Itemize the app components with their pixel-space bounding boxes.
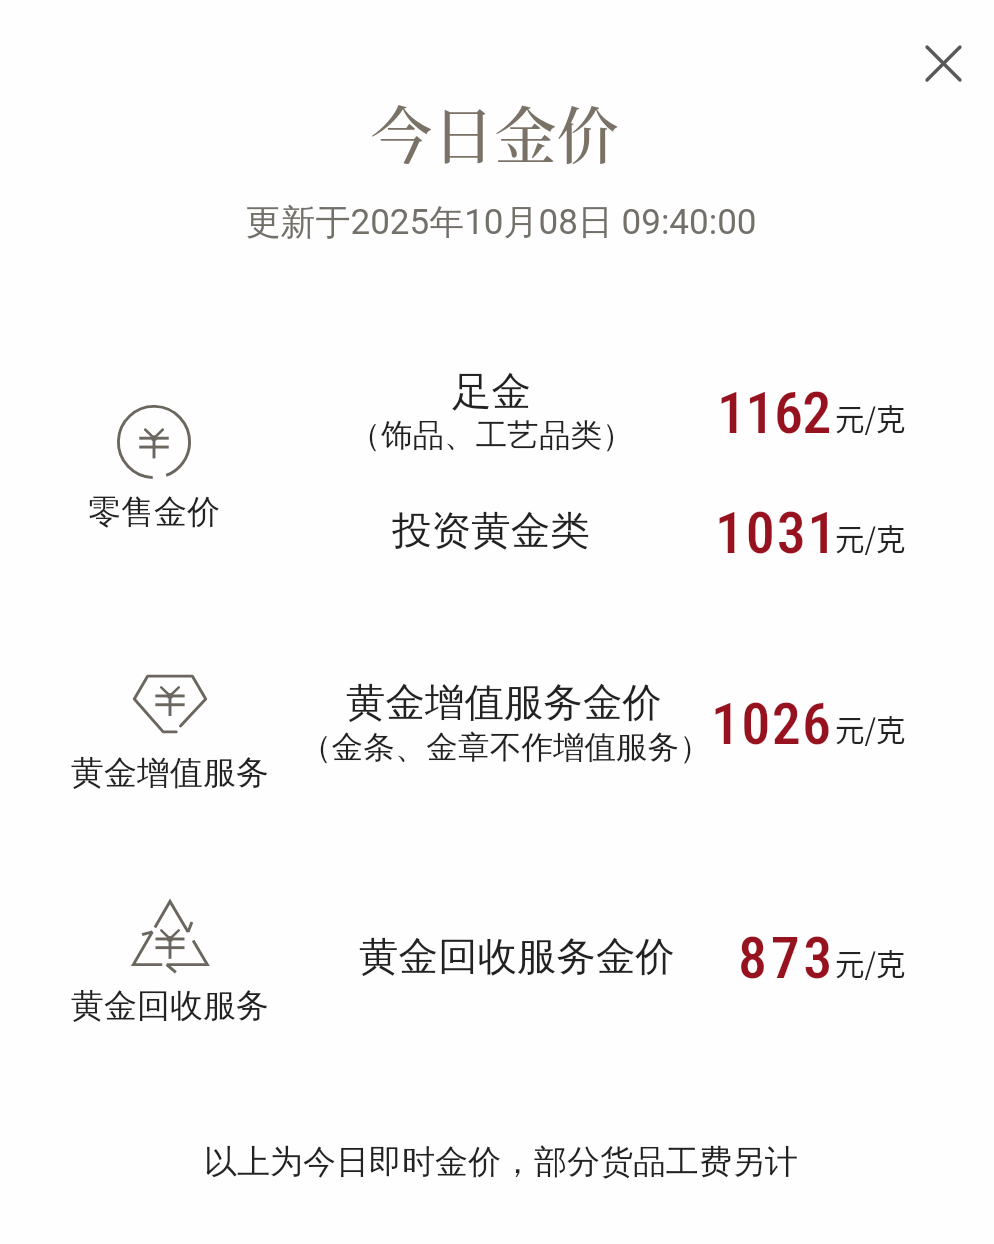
- staticText: 元/克: [835, 396, 906, 439]
- staticText: 更新于2025年10月08日 09:40:00: [245, 200, 757, 244]
- staticText: 黄金回收服务金价: [359, 932, 675, 982]
- staticText: 以上为今日即时金价，部分货品工费另计: [204, 1141, 798, 1183]
- button[interactable]: Close: [898, 18, 988, 108]
- button[interactable]: [80, 649, 260, 799]
- staticText: 足金: [452, 367, 531, 417]
- staticText: 投资黄金类: [392, 506, 590, 556]
- staticText: 1031: [715, 499, 839, 567]
- staticText: （金条、金章不作增值服务）: [300, 728, 711, 768]
- staticText: 零售金价: [88, 491, 220, 533]
- staticText: 873: [738, 924, 836, 992]
- staticText: 黄金增值服务: [71, 752, 269, 794]
- staticText: 元/克: [835, 941, 906, 984]
- button[interactable]: [64, 387, 244, 537]
- staticText: 1162: [717, 379, 831, 447]
- button[interactable]: [80, 878, 260, 1028]
- staticText: （饰品、工艺品类）: [349, 416, 634, 456]
- staticText: 黄金增值服务金价: [346, 678, 662, 728]
- staticText: 1026: [711, 690, 833, 758]
- staticText: 元/克: [835, 516, 906, 559]
- staticText: 黄金回收服务: [71, 985, 269, 1027]
- staticText: 今日金价: [370, 88, 619, 177]
- staticText: 元/克: [835, 707, 906, 750]
